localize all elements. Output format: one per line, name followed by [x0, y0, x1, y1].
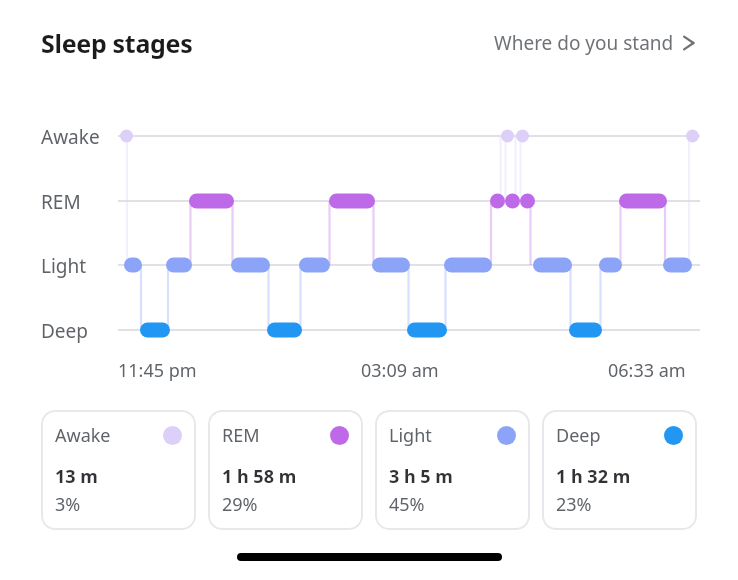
button[interactable]: Deep: [542, 410, 697, 530]
staticText: Light: [41, 253, 87, 279]
button[interactable]: Where do you stand: [490, 26, 700, 60]
staticText: 45%: [389, 492, 425, 517]
staticText: 1 h 32 m: [556, 464, 631, 489]
staticText: Deep: [556, 423, 601, 448]
staticText: 29%: [222, 492, 258, 517]
staticText: 11:45 pm: [118, 358, 197, 383]
staticText: 13 m: [55, 464, 98, 489]
staticText: 06:33 am: [608, 358, 686, 383]
staticText: 1 h 58 m: [222, 464, 297, 489]
staticText: 3 h 5 m: [389, 464, 453, 489]
button[interactable]: Sleep stages: [41, 26, 193, 60]
staticText: Deep: [41, 318, 88, 344]
staticText: REM: [222, 423, 260, 448]
staticText: Sleep stages: [41, 26, 193, 60]
staticText: Awake: [41, 124, 100, 150]
staticText: REM: [41, 189, 81, 215]
staticText: 23%: [556, 492, 592, 517]
button[interactable]: Awake: [41, 410, 196, 530]
staticText: Awake: [55, 423, 111, 448]
staticText: 03:09 am: [361, 358, 439, 383]
button[interactable]: REM: [208, 410, 363, 530]
staticText: Where do you stand: [494, 30, 674, 56]
staticText: 3%: [55, 492, 81, 517]
button[interactable]: Light: [375, 410, 530, 530]
staticText: Light: [389, 423, 432, 448]
